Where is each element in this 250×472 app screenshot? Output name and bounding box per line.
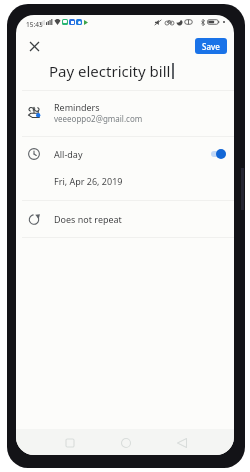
button[interactable]: Back <box>171 432 192 453</box>
staticText: Reminders <box>54 101 100 113</box>
button[interactable]: Fri, Apr 26, 2019 <box>54 175 123 187</box>
staticText: All-day <box>54 148 83 160</box>
staticText: Save <box>202 41 220 52</box>
button[interactable]: Close <box>22 34 46 58</box>
button[interactable]: Recents <box>59 432 80 453</box>
button[interactable]: Does not repeat <box>16 201 234 237</box>
staticText: Pay electricity bill <box>49 61 171 81</box>
staticText: Does not repeat <box>54 213 122 225</box>
button[interactable]: Save <box>195 38 227 54</box>
staticText: 15:43 <box>26 20 43 29</box>
button[interactable]: All-day <box>16 137 234 170</box>
button[interactable]: Home <box>115 432 136 453</box>
button[interactable]: Pay electricity bill <box>49 61 173 81</box>
staticText: veeeoppo2@gmail.com <box>54 113 143 124</box>
button[interactable]: Reminders <box>16 88 234 136</box>
button[interactable]: All-day switch <box>210 146 232 162</box>
